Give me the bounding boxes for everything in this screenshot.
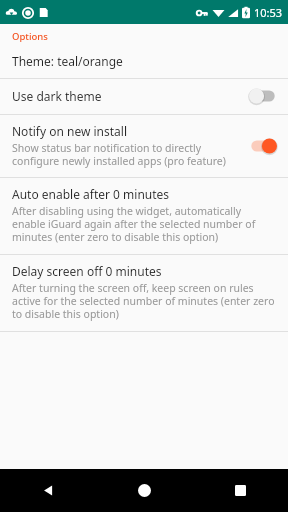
staticText: Show status bar notification to directly… (12, 141, 240, 168)
staticText: After disabling using the widget, automa… (12, 204, 276, 244)
staticText: After turning the screen off, keep scree… (12, 281, 276, 321)
staticText: Use dark theme (12, 88, 102, 104)
staticText: 10:53 (254, 5, 283, 20)
button[interactable]: Recent apps (192, 469, 288, 512)
button[interactable]: Use dark theme (0, 79, 288, 114)
staticText: Auto enable after 0 minutes (12, 186, 170, 202)
button[interactable]: Off (248, 87, 278, 105)
button[interactable]: Back (0, 469, 96, 512)
button[interactable]: Delay screen off 0 minutes (0, 255, 288, 331)
staticText: Delay screen off 0 minutes (12, 263, 162, 279)
staticText: Notify on new install (12, 123, 127, 139)
button[interactable]: Notify on new install (0, 115, 288, 177)
button[interactable]: On (248, 137, 278, 155)
button[interactable]: Home (96, 469, 192, 512)
staticText: Options (12, 30, 48, 43)
staticText: Theme: teal/orange (12, 53, 123, 69)
button[interactable]: Options (0, 24, 288, 78)
button[interactable]: Auto enable after 0 minutes (0, 178, 288, 254)
